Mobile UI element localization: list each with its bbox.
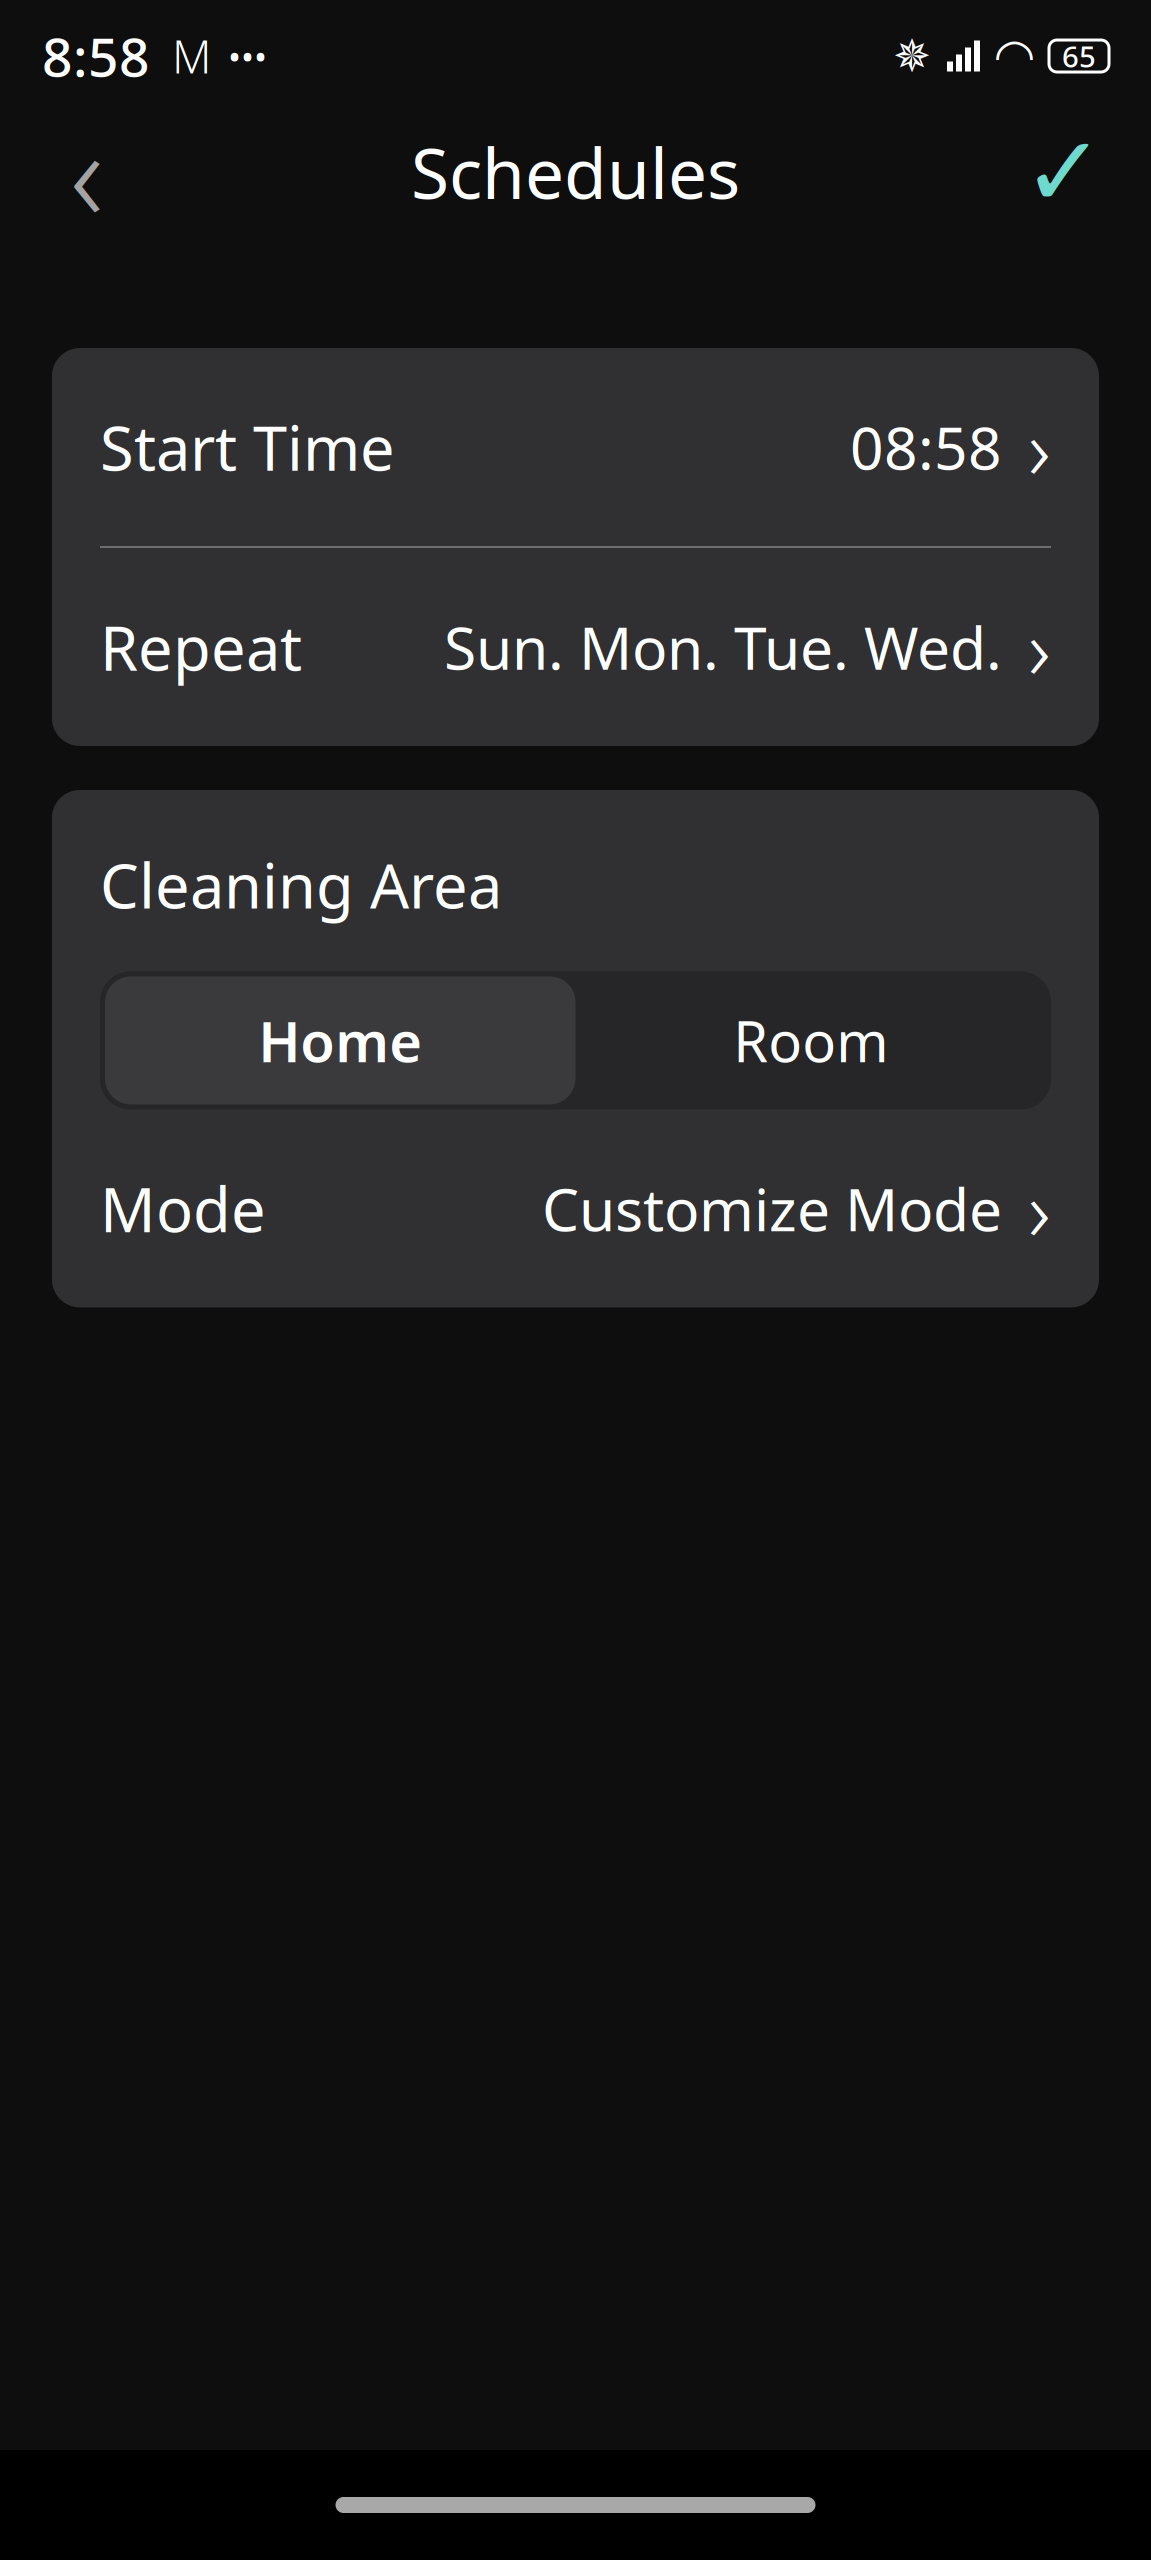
staticText: ✓ <box>1022 116 1105 228</box>
staticText: › <box>1028 1152 1051 1265</box>
staticText: 8:58 <box>42 21 150 91</box>
staticText: 65 <box>1062 36 1096 75</box>
button[interactable]: Mode <box>52 1109 1099 1307</box>
staticText: Repeat <box>100 606 302 688</box>
button[interactable]: Confirm <box>1009 117 1119 227</box>
staticText: Cleaning Area <box>100 844 502 925</box>
staticText: 08:58 <box>850 408 1002 486</box>
button[interactable]: Room <box>575 976 1046 1104</box>
staticText: Start Time <box>100 406 395 488</box>
staticText: Schedules <box>411 126 740 218</box>
button[interactable]: Back <box>32 117 142 227</box>
staticText: › <box>1028 390 1051 504</box>
staticText: › <box>1028 590 1051 704</box>
staticText: Sun. Mon. Tue. Wed. <box>444 608 1002 686</box>
staticText: Mode <box>100 1168 266 1249</box>
staticText: Room <box>733 1003 888 1078</box>
staticText: ••• <box>228 33 267 79</box>
button[interactable]: Repeat <box>52 548 1099 746</box>
button[interactable]: Home <box>105 976 575 1104</box>
staticText: ‹ <box>70 87 104 257</box>
staticText: Home <box>258 1003 422 1078</box>
button[interactable]: Start Time <box>52 348 1099 546</box>
staticText: ✵ <box>893 30 931 82</box>
staticText: M <box>172 26 212 86</box>
staticText: ◠ <box>996 29 1033 83</box>
staticText: Customize Mode <box>542 1169 1002 1247</box>
